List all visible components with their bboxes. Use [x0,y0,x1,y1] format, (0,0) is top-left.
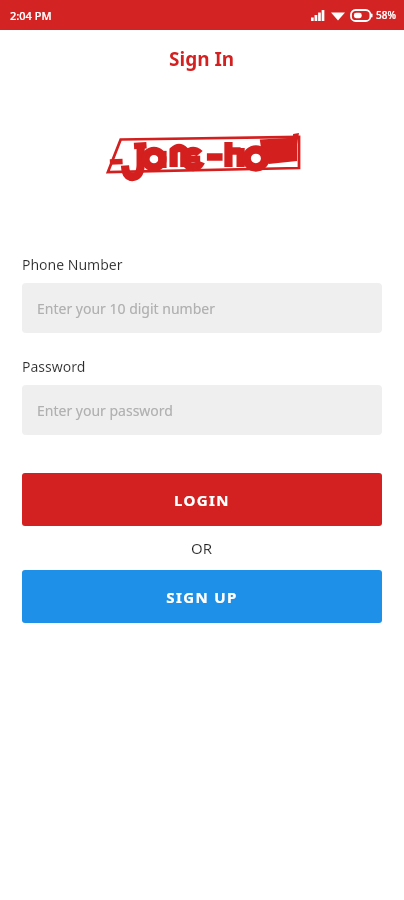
staticText: 58% [376,8,396,22]
staticText: 2:04 PM [10,8,52,23]
staticText: SIGN UP [166,587,238,607]
staticText: Password [22,357,86,376]
staticText: Enter your 10 digit number [37,299,215,318]
button[interactable]: LOGIN [22,473,382,526]
button[interactable]: Enter your password [22,385,382,435]
button[interactable]: SIGN UP [22,570,382,623]
staticText: OR [191,538,213,558]
staticText: LOGIN [174,490,230,510]
staticText: Phone Number [22,255,123,274]
staticText: Enter your password [37,401,173,420]
staticText: Sign In [169,46,235,72]
other: Jane-Ho logo [104,131,300,181]
button[interactable]: Enter your 10 digit number [22,283,382,333]
